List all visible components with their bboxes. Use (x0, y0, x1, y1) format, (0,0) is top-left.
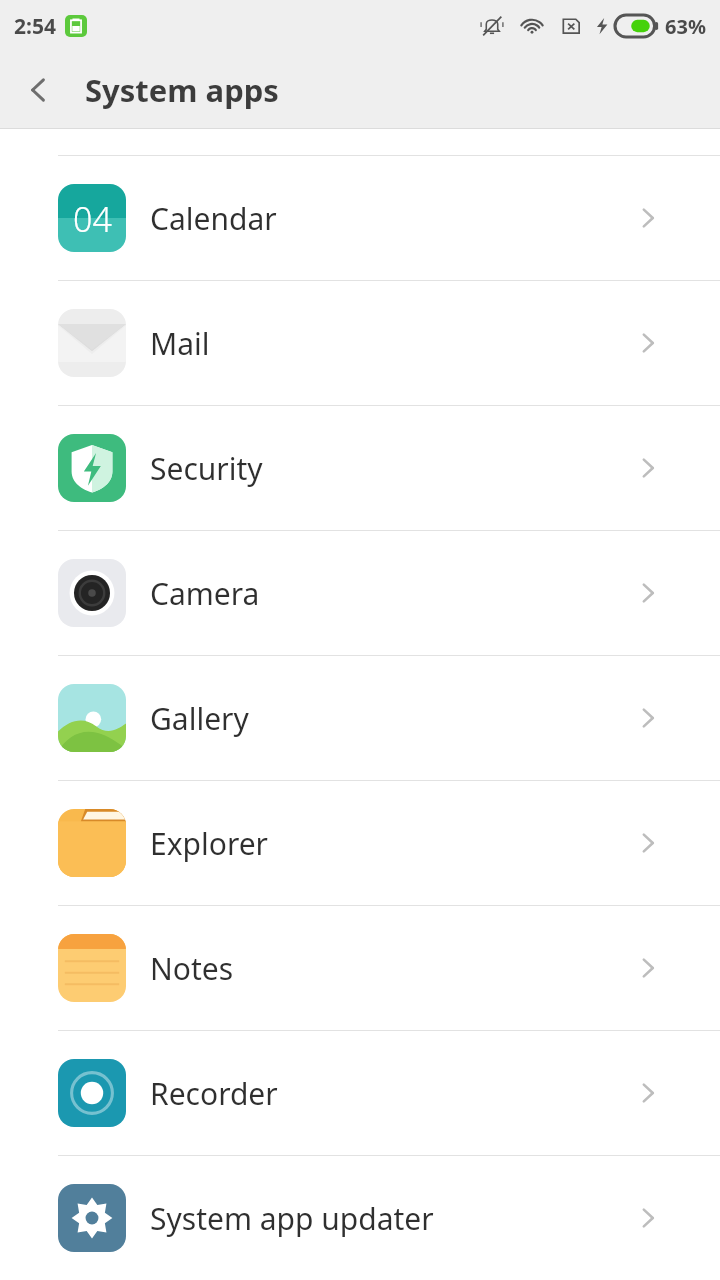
staticText: Gallery (150, 698, 249, 739)
button[interactable]: Explorer (0, 781, 720, 905)
button[interactable]: Camera (0, 531, 720, 655)
button[interactable]: Back (0, 52, 76, 128)
staticText: System app updater (150, 1198, 434, 1239)
staticText: 2:54 (14, 12, 56, 41)
staticText: Calendar (150, 198, 277, 239)
staticText: Notes (150, 948, 234, 989)
button[interactable]: Notes (0, 906, 720, 1030)
staticText: Explorer (150, 823, 268, 864)
staticText: Security (150, 448, 263, 489)
button[interactable]: Mail (0, 281, 720, 405)
staticText: 04 (73, 196, 112, 242)
staticText: 63% (665, 13, 706, 40)
button[interactable]: 04 (0, 156, 720, 280)
button[interactable]: Security (0, 406, 720, 530)
staticText: Mail (150, 323, 210, 364)
staticText: Recorder (150, 1073, 278, 1114)
staticText: System apps (85, 69, 279, 111)
staticText: Camera (150, 573, 260, 614)
button[interactable]: Recorder (0, 1031, 720, 1155)
button[interactable]: Gallery (0, 656, 720, 780)
button[interactable]: System app updater (0, 1156, 720, 1280)
